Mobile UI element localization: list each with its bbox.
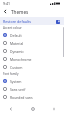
staticText: Themes (11, 9, 29, 15)
button[interactable]: Recents (43, 103, 64, 114)
staticText: Accent colour (3, 26, 22, 30)
staticText: Custom (10, 65, 23, 70)
button[interactable]: Back (0, 6, 11, 17)
button[interactable]: Default (0, 31, 64, 39)
staticText: 9:41 (3, 1, 10, 6)
button[interactable]: System (0, 77, 64, 85)
button[interactable]: Dynamic (0, 47, 64, 55)
button[interactable]: Sans serif (0, 85, 64, 93)
staticText: Default (10, 33, 22, 38)
button[interactable]: Restore defaults (0, 17, 64, 25)
staticText: Dynamic (10, 49, 24, 54)
staticText: Monochrome (10, 57, 32, 62)
staticText: Restore defaults (3, 19, 32, 24)
staticText: Material (10, 41, 24, 46)
button[interactable]: Apply theme (54, 18, 61, 25)
staticText: Sans serif (10, 87, 26, 92)
button[interactable]: Back (0, 103, 22, 114)
button[interactable]: Custom (0, 63, 64, 71)
staticText: System (10, 79, 22, 84)
button[interactable]: Home (22, 103, 43, 114)
staticText: Font family (3, 72, 19, 76)
button[interactable]: Material (0, 39, 64, 47)
staticText: Rounded sans (10, 95, 33, 100)
button[interactable]: Rounded sans (0, 93, 64, 101)
button[interactable]: Monochrome (0, 55, 64, 63)
